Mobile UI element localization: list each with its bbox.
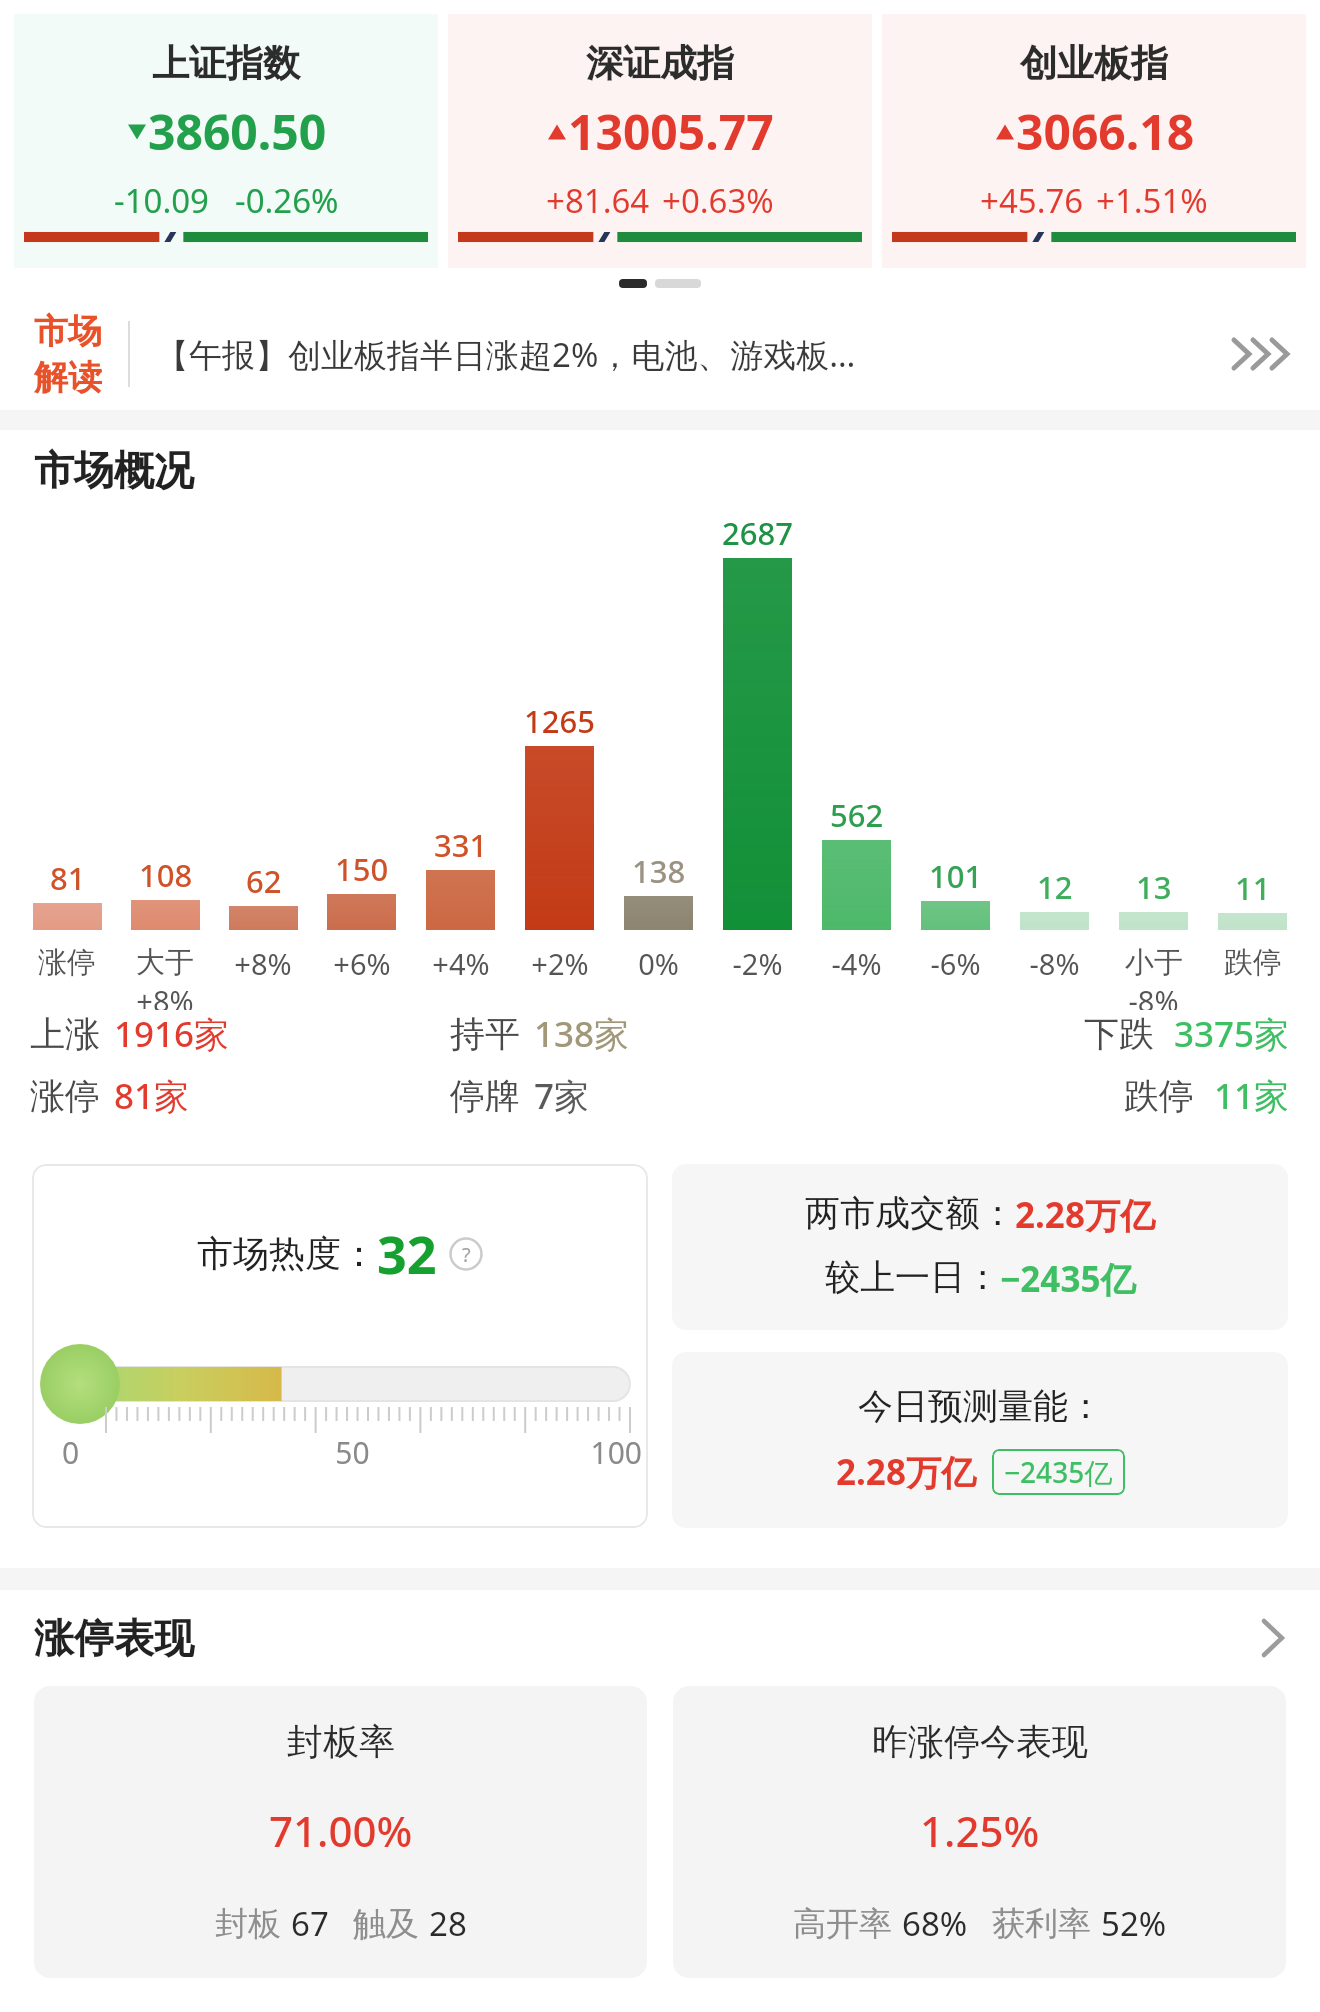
staticText: 100 — [449, 1432, 642, 1473]
button[interactable]: 市场 — [0, 298, 1320, 410]
staticText: 下跌 — [1084, 1012, 1154, 1056]
staticText: 停牌 — [450, 1074, 520, 1118]
staticText: 138家 — [534, 1010, 630, 1058]
staticText: 3066.18 — [1016, 99, 1195, 164]
staticText: +45.76 — [980, 178, 1084, 223]
staticText: 0% — [638, 944, 679, 983]
staticText: 高开率 — [793, 1903, 892, 1945]
staticText: 562 — [830, 794, 884, 836]
staticText: -6% — [930, 944, 981, 983]
staticText: -8% — [1029, 944, 1080, 983]
staticText: 108 — [139, 854, 193, 896]
staticText: 封板 — [215, 1903, 281, 1945]
staticText: 28 — [429, 1901, 467, 1946]
other: 更多市场解读 — [1228, 334, 1286, 374]
staticText: 市场热度： — [197, 1231, 377, 1276]
staticText: 32 — [377, 1218, 437, 1289]
button[interactable]: 上证指数 — [14, 14, 438, 268]
staticText: 市场 — [34, 310, 102, 353]
staticText: −2435亿 — [1000, 1255, 1136, 1303]
button[interactable]: 封板率 — [34, 1686, 647, 1978]
staticText: 101 — [929, 855, 983, 897]
staticText: +4% — [432, 944, 490, 983]
staticText: 71.00% — [269, 1802, 413, 1859]
staticText: 7家 — [534, 1072, 590, 1120]
staticText: 市场概况 — [34, 445, 194, 495]
staticText: 2.28万亿 — [836, 1448, 976, 1496]
other: 帮助 — [449, 1237, 483, 1271]
staticText: 13 — [1136, 866, 1172, 908]
staticText: 跌停 — [1224, 944, 1282, 981]
staticText: +81.64 — [546, 178, 650, 223]
staticText: 3375家 — [1174, 1010, 1290, 1058]
staticText: 涨停表现 — [34, 1613, 194, 1663]
staticText: 创业板指 — [1020, 40, 1168, 87]
staticText: +8% — [136, 981, 194, 1010]
button[interactable]: 今日预测量能： — [672, 1352, 1288, 1528]
staticText: 持平 — [450, 1012, 520, 1056]
staticText: 3860.50 — [148, 99, 327, 164]
staticText: 上涨 — [30, 1012, 100, 1056]
staticText: 62 — [246, 860, 282, 902]
staticText: 触及 — [353, 1903, 419, 1945]
staticText: +6% — [333, 944, 391, 983]
button[interactable]: 昨涨停今表现 — [673, 1686, 1286, 1978]
staticText: 涨停 — [30, 1074, 100, 1118]
staticText: 2687 — [722, 512, 793, 554]
staticText: 67 — [291, 1901, 329, 1946]
staticText: 涨停 — [38, 944, 96, 981]
staticText: 1916家 — [114, 1010, 230, 1058]
staticText: 两市成交额： — [805, 1191, 1015, 1235]
button[interactable]: 深证成指 — [448, 14, 872, 268]
staticText: 138 — [632, 850, 686, 892]
staticText: −2435亿 — [1004, 1453, 1113, 1491]
button[interactable]: 创业板指 — [882, 14, 1306, 268]
staticText: 大于 — [136, 944, 194, 981]
staticText: 81家 — [114, 1072, 190, 1120]
staticText: -2% — [732, 944, 783, 983]
staticText: 今日预测量能： — [858, 1384, 1103, 1428]
staticText: ? — [462, 1241, 471, 1268]
staticText: +1.51% — [1096, 178, 1208, 223]
staticText: 11 — [1235, 867, 1271, 909]
staticText: 较上一日： — [825, 1255, 1000, 1299]
staticText: 封板率 — [287, 1719, 395, 1764]
staticText: 小于 — [1125, 944, 1183, 981]
staticText: 2.28万亿 — [1015, 1191, 1155, 1239]
staticText: 上证指数 — [152, 40, 300, 87]
staticText: +2% — [531, 944, 589, 983]
staticText: -0.26% — [235, 178, 339, 223]
staticText: 跌停 — [1124, 1074, 1194, 1118]
staticText: 0 — [62, 1432, 256, 1473]
staticText: 68% — [902, 1901, 968, 1946]
staticText: 81 — [50, 857, 86, 899]
button[interactable]: 两市成交额： — [672, 1164, 1288, 1330]
staticText: -10.09 — [114, 178, 209, 223]
staticText: 11家 — [1214, 1072, 1290, 1120]
staticText: 1265 — [524, 700, 595, 742]
button[interactable]: 市场热度： — [32, 1164, 648, 1528]
staticText: 获利率 — [992, 1903, 1091, 1945]
staticText: 50 — [256, 1432, 449, 1473]
staticText: 331 — [434, 824, 488, 866]
staticText: 解读 — [34, 356, 102, 399]
staticText: 深证成指 — [586, 40, 734, 87]
staticText: +0.63% — [662, 178, 774, 223]
staticText: +8% — [234, 944, 292, 983]
staticText: 12 — [1037, 866, 1073, 908]
staticText: 150 — [335, 848, 389, 890]
staticText: -4% — [831, 944, 882, 983]
staticText: -8% — [1128, 981, 1179, 1010]
staticText: 13005.77 — [568, 99, 774, 164]
button[interactable]: 涨停表现 — [0, 1590, 1320, 1686]
staticText: 52% — [1101, 1901, 1167, 1946]
staticText: 1.25% — [920, 1802, 1040, 1859]
other: 查看涨停表现详情 — [1252, 1621, 1286, 1655]
staticText: 【午报】创业板指半日涨超2%，电池、游戏板… — [156, 332, 1218, 377]
staticText: 昨涨停今表现 — [872, 1719, 1088, 1764]
